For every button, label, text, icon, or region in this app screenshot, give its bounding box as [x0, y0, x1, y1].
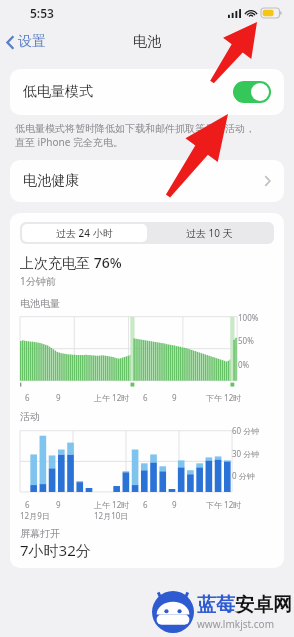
staticText: 1分钟前 — [20, 274, 56, 288]
staticText: 12月9日 — [20, 510, 50, 521]
button[interactable]: 电池健康 — [10, 160, 284, 202]
button[interactable]: 过去 10 天 — [147, 224, 272, 242]
staticText: 上午 12时 — [94, 392, 130, 403]
staticText: 活动 — [20, 410, 40, 423]
staticText: 安卓网 — [235, 593, 292, 617]
staticText: 100% — [238, 312, 259, 323]
staticText: 设置 — [18, 33, 46, 51]
staticText: 上次充电至 76% — [20, 253, 122, 272]
staticText: 30 分钟 — [232, 448, 260, 459]
staticText: 6 — [25, 499, 30, 510]
staticText: www.lmkjst.com — [197, 617, 274, 631]
staticText: 6 — [143, 392, 148, 403]
button[interactable]: 低电量模式开关 — [233, 81, 271, 103]
staticText: 9 — [56, 499, 61, 510]
staticText: 9 — [172, 392, 177, 403]
button[interactable]: 低电量模式 — [10, 69, 284, 115]
staticText: 过去 24 小时 — [56, 226, 113, 240]
staticText: 6 — [143, 499, 148, 510]
staticText: 12月10日 — [94, 510, 129, 521]
staticText: 电池电量 — [20, 297, 60, 310]
staticText: 下午 12时 — [206, 392, 242, 403]
staticText: 上午 12时 — [94, 499, 130, 510]
staticText: 0% — [238, 359, 250, 370]
staticText: 60 分钟 — [232, 425, 260, 436]
staticText: 屏幕打开 — [20, 527, 60, 540]
staticText: 9 — [56, 392, 61, 403]
staticText: 7小时32分 — [20, 540, 91, 560]
staticText: 50% — [238, 335, 254, 346]
button[interactable]: 设置 — [0, 29, 54, 55]
staticText: 过去 10 天 — [186, 226, 233, 240]
staticText: 低电量模式 — [23, 83, 233, 101]
staticText: 6 — [25, 392, 30, 403]
button[interactable]: 过去 24 小时 — [22, 224, 147, 242]
staticText: 蓝莓 — [197, 593, 235, 617]
staticText: 9 — [172, 499, 177, 510]
staticText: 5:53 — [30, 5, 54, 21]
staticText: 电池健康 — [23, 172, 264, 190]
staticText: 下午 12时 — [206, 499, 242, 510]
staticText: 低电量模式将暂时降低如下载和邮件抓取等后台活动， 直至 iPhone 完全充电。 — [15, 122, 255, 149]
staticText: 电池 — [133, 33, 161, 51]
staticText: 0 分钟 — [232, 470, 255, 481]
